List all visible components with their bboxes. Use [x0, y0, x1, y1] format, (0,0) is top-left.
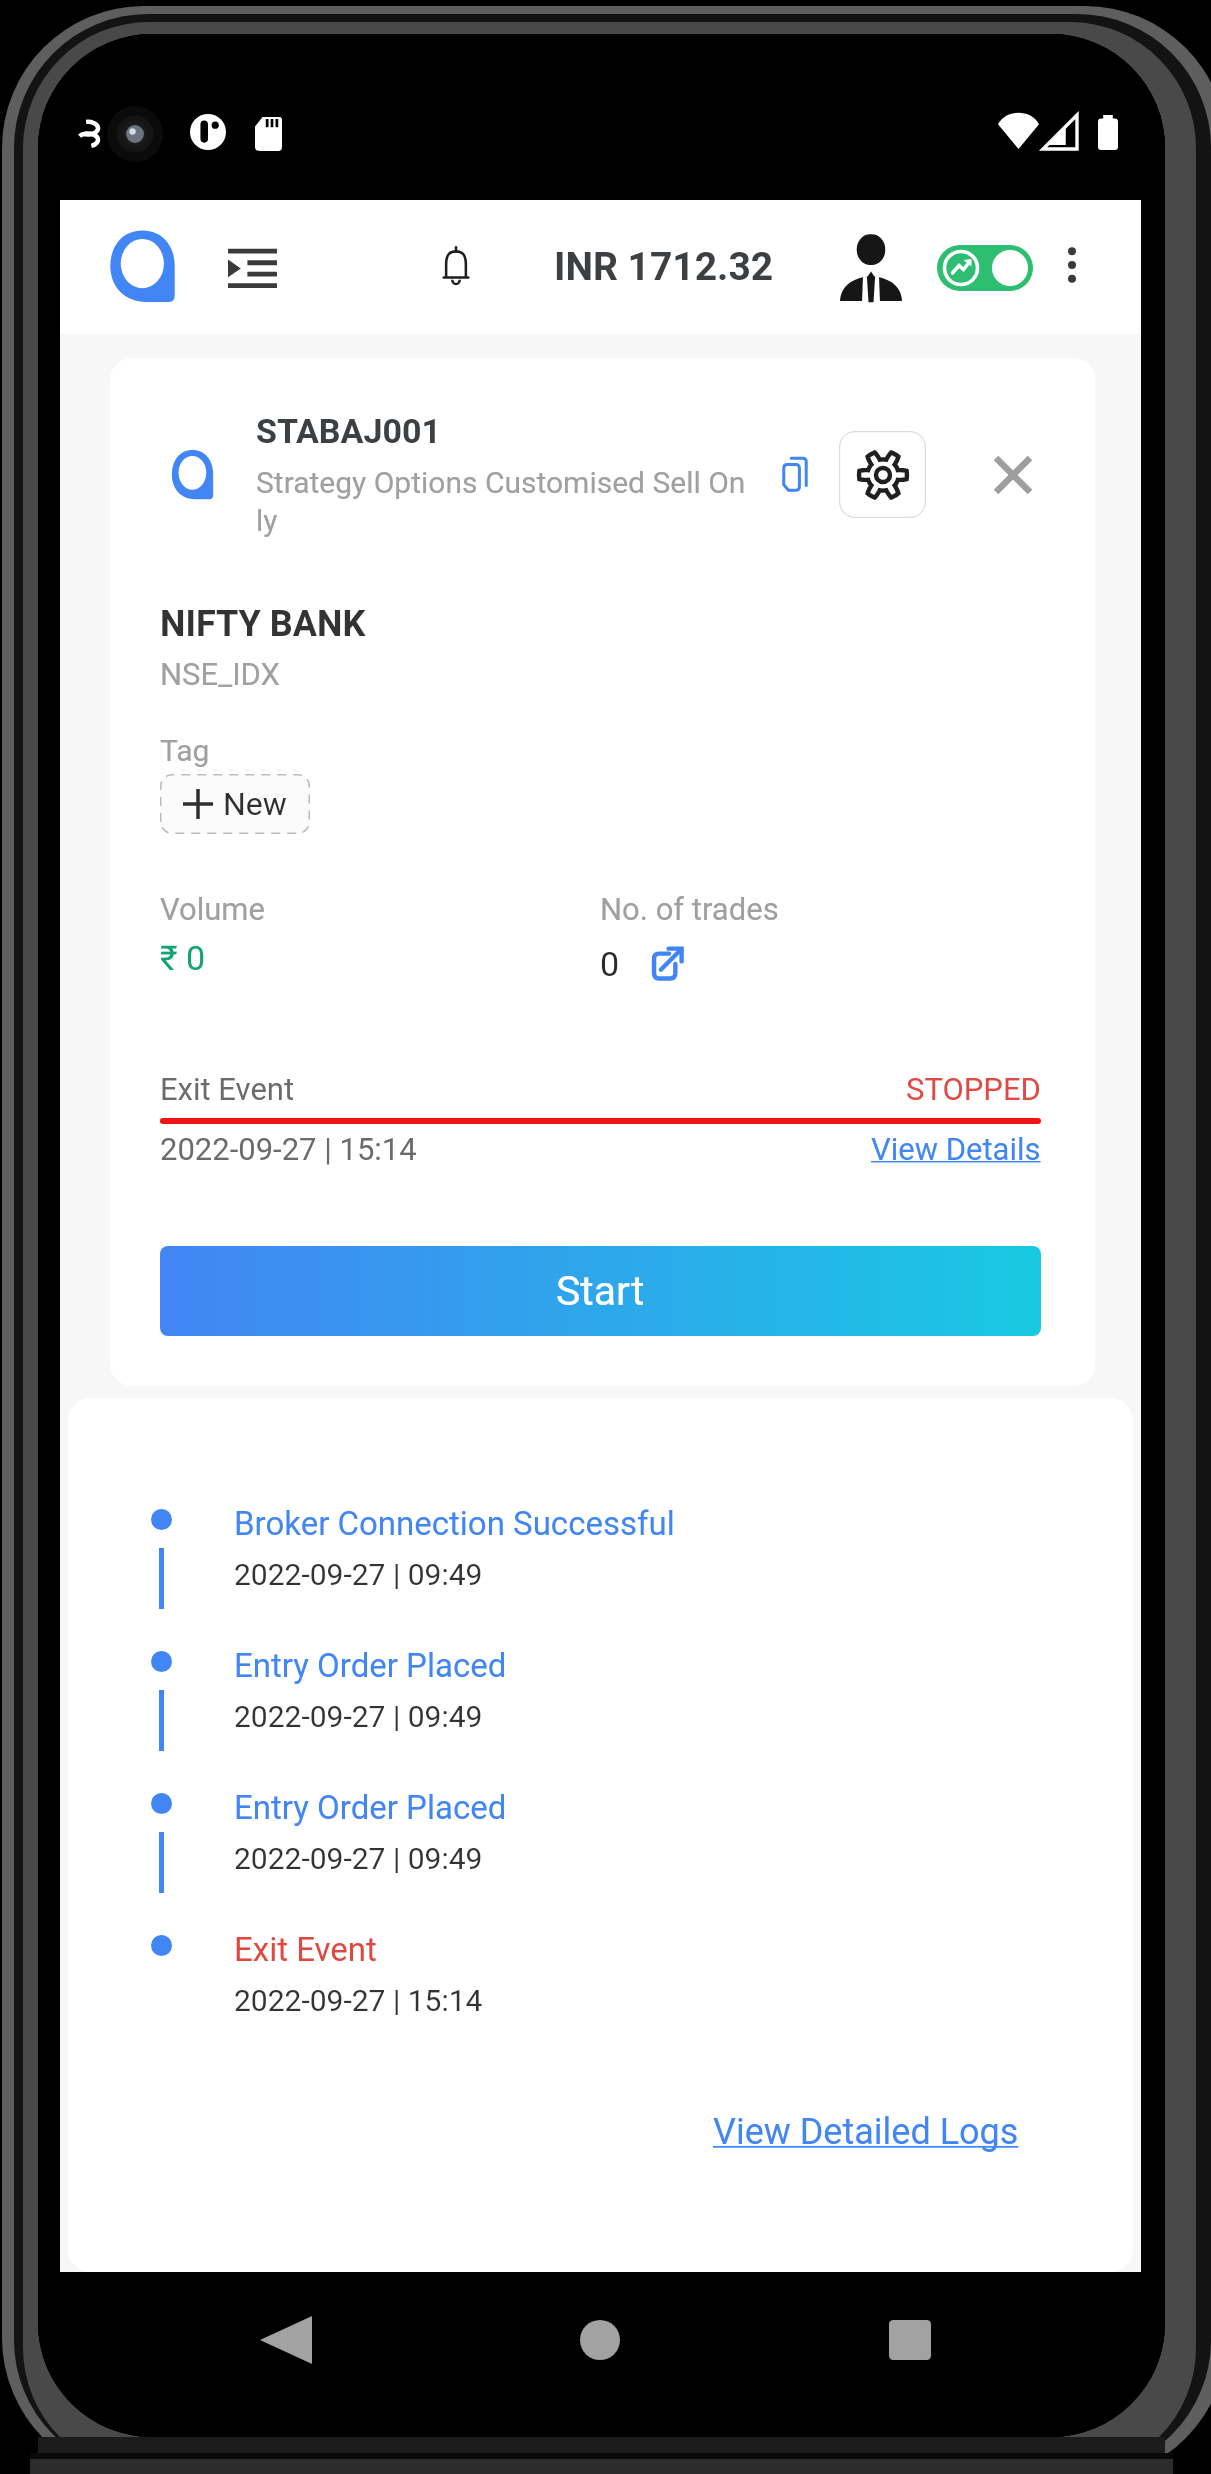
- button[interactable]: Home: [580, 2320, 620, 2360]
- button[interactable]: Settings: [839, 431, 926, 518]
- button[interactable]: Live trading toggle: [937, 245, 1033, 291]
- staticText: STABAJ001: [256, 411, 441, 451]
- staticText: Start: [556, 1267, 645, 1315]
- button[interactable]: View Details: [871, 1131, 1041, 1167]
- staticText: 2022-09-27 | 09:49: [234, 1699, 483, 1734]
- staticText: View Detailed Logs: [713, 2111, 1019, 2153]
- button[interactable]: Back: [260, 2316, 312, 2364]
- button[interactable]: More options: [1060, 244, 1084, 286]
- button[interactable]: Account: [840, 233, 902, 301]
- button[interactable]: Recent apps: [889, 2320, 931, 2360]
- staticText: Volume: [160, 891, 265, 927]
- staticText: Entry Order Placed: [234, 1646, 507, 1685]
- button[interactable]: Close: [996, 458, 1030, 492]
- staticText: 2022-09-27 | 09:49: [234, 1841, 483, 1876]
- button[interactable]: Copy strategy id: [779, 455, 813, 495]
- staticText: View Details: [871, 1131, 1041, 1167]
- staticText: New: [223, 785, 287, 823]
- staticText: 2022-09-27 | 09:49: [234, 1557, 483, 1592]
- staticText: Broker Connection Successful: [234, 1504, 675, 1543]
- staticText: Tag: [160, 733, 210, 768]
- staticText: 2022-09-27 | 15:14: [234, 1983, 483, 2018]
- button[interactable]: Home logo: [109, 229, 176, 303]
- staticText: ₹ 0: [160, 938, 206, 978]
- staticText: Exit Event: [160, 1071, 295, 1107]
- staticText: 0: [600, 944, 620, 984]
- button[interactable]: Open trade list: [640, 938, 692, 990]
- button[interactable]: View Detailed Logs: [713, 2111, 1019, 2153]
- staticText: NSE_IDX: [160, 656, 281, 692]
- button[interactable]: Add new tag: [160, 774, 310, 834]
- staticText: INR 1712.32: [554, 244, 774, 290]
- staticText: No. of trades: [600, 891, 779, 927]
- staticText: Strategy Options Customised Sell On ly: [256, 465, 746, 538]
- button[interactable]: Start: [160, 1246, 1041, 1336]
- button[interactable]: Notifications: [439, 244, 473, 290]
- button[interactable]: Menu: [227, 247, 278, 289]
- staticText: 2022-09-27 | 15:14: [160, 1131, 417, 1167]
- staticText: Entry Order Placed: [234, 1788, 507, 1827]
- staticText: NIFTY BANK: [160, 603, 366, 645]
- staticText: STOPPED: [906, 1071, 1041, 1107]
- staticText: Exit Event: [234, 1930, 377, 1969]
